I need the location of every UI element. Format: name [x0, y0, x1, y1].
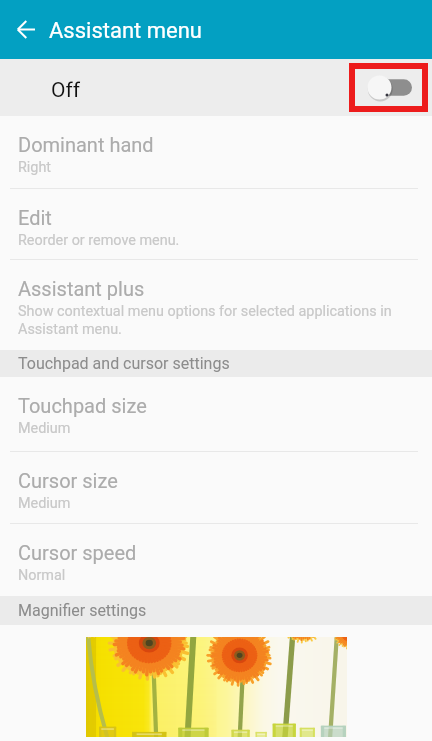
staticText: Dominant hand: [18, 133, 154, 156]
staticText: Assistant menu: [49, 18, 202, 44]
button[interactable]: Touchpad size: [0, 377, 432, 451]
staticText: Cursor speed: [18, 541, 137, 564]
button[interactable]: Assistant plus: [0, 260, 432, 350]
button[interactable]: Off: [0, 59, 432, 116]
button[interactable]: Cursor size: [0, 452, 432, 523]
staticText: Off: [51, 78, 81, 103]
staticText: Right: [18, 159, 52, 176]
staticText: Assistant plus: [18, 277, 145, 300]
button[interactable]: Cursor speed: [0, 524, 432, 596]
staticText: Magnifier settings: [18, 601, 147, 620]
staticText: Normal: [18, 567, 66, 584]
staticText: Cursor size: [18, 469, 118, 492]
staticText: Reorder or remove menu.: [18, 232, 180, 249]
staticText: Show contextual menu options for selecte…: [18, 303, 392, 338]
button[interactable]: Edit: [0, 189, 432, 259]
staticText: Touchpad and cursor settings: [18, 354, 230, 373]
staticText: Touchpad size: [18, 394, 147, 417]
staticText: Edit: [18, 206, 52, 229]
staticText: Medium: [18, 495, 71, 512]
button[interactable]: Navigate up: [4, 7, 48, 51]
button[interactable]: Dominant hand: [0, 116, 432, 188]
staticText: Medium: [18, 420, 71, 437]
